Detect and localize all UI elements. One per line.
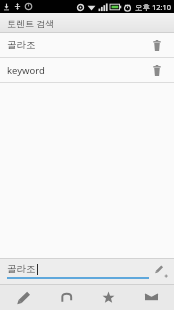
button[interactable]: Delete 골라조 xyxy=(148,35,166,55)
staticText: keyword xyxy=(7,64,148,77)
staticText: 골라조 xyxy=(7,39,148,51)
button[interactable]: 골라조 xyxy=(0,33,174,58)
button[interactable]: 골라조 xyxy=(7,263,149,279)
button[interactable]: keyword xyxy=(0,58,174,83)
button[interactable]: Delete keyword xyxy=(148,60,166,80)
staticText: 골라조 xyxy=(7,263,36,275)
button[interactable]: Mail xyxy=(131,284,171,310)
button[interactable]: Back xyxy=(46,284,86,310)
staticText: 토렌트 검색 xyxy=(7,17,55,29)
button[interactable]: Compose xyxy=(3,284,43,310)
button[interactable]: Add keyword xyxy=(153,263,169,279)
button[interactable]: Favorites xyxy=(88,284,128,310)
staticText: 오후 12:10 xyxy=(135,2,172,12)
